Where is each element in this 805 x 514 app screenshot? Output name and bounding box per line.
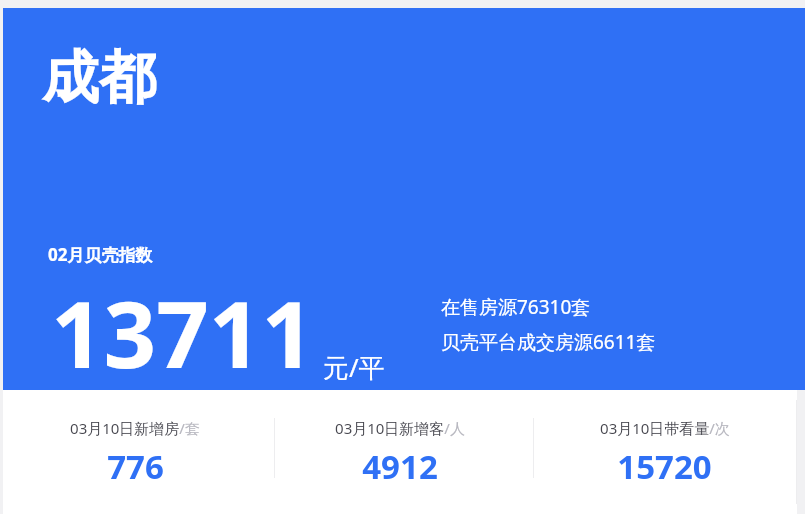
staticText: 成都 — [42, 42, 156, 114]
staticText: 15720 — [617, 444, 712, 489]
staticText: 元/平 — [323, 349, 385, 385]
staticText: 03月10日新增客/人 — [335, 418, 465, 438]
staticText: 776 — [107, 444, 164, 489]
button[interactable]: 03月10日带看量/次 — [532, 418, 797, 489]
button[interactable]: 03月10日新增房/套 — [3, 418, 267, 489]
staticText: 03月10日带看量/次 — [600, 418, 730, 438]
staticText: 02月贝壳指数 — [48, 243, 153, 266]
staticText: 13711 — [51, 270, 315, 395]
staticText: 贝壳平台成交房源6611套 — [441, 329, 656, 355]
button[interactable]: 03月10日新增客/人 — [267, 418, 532, 489]
staticText: 4912 — [362, 444, 438, 489]
staticText: 03月10日新增房/套 — [70, 418, 200, 438]
staticText: 在售房源76310套 — [441, 294, 591, 320]
button[interactable]: 成都 — [3, 8, 805, 390]
